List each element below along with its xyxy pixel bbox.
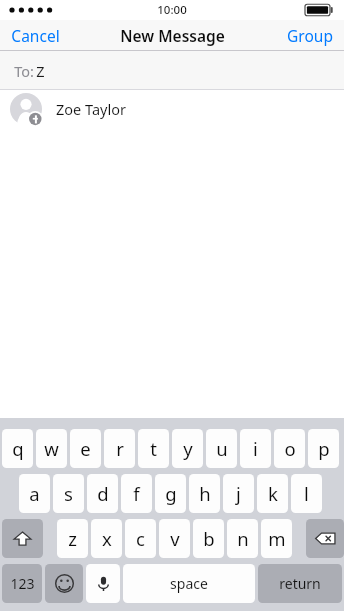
button[interactable]: h	[189, 474, 220, 513]
staticText: j	[236, 481, 241, 506]
button[interactable]: a	[19, 474, 50, 513]
staticText: q	[12, 436, 24, 461]
button[interactable]: j	[223, 474, 254, 513]
staticText: To:	[12, 61, 36, 81]
staticText: New Message	[120, 25, 225, 46]
staticText: f	[133, 481, 140, 506]
staticText: l	[304, 481, 309, 506]
staticText: 123	[10, 574, 35, 593]
button[interactable]: i	[240, 429, 271, 468]
button[interactable]: p	[308, 429, 339, 468]
button[interactable]: k	[257, 474, 288, 513]
button[interactable]: r	[104, 429, 135, 468]
button[interactable]: m	[261, 519, 292, 558]
button[interactable]: Zoe Taylor	[0, 90, 344, 128]
button[interactable]: d	[87, 474, 118, 513]
staticText: c	[136, 526, 145, 551]
staticText: x	[102, 526, 112, 551]
button[interactable]: space	[123, 564, 255, 603]
staticText: d	[97, 481, 109, 506]
staticText: 10:00	[157, 2, 187, 18]
staticText: h	[199, 481, 211, 506]
staticText: Cancel	[11, 25, 60, 46]
staticText: u	[216, 436, 228, 461]
button[interactable]: w	[36, 429, 67, 468]
staticText: Z	[36, 61, 45, 81]
button[interactable]: o	[274, 429, 305, 468]
button[interactable]: s	[53, 474, 84, 513]
button[interactable]: 123	[2, 564, 42, 603]
button[interactable]: To:	[0, 51, 344, 90]
staticText: m	[268, 526, 286, 551]
staticText: z	[68, 526, 77, 551]
button[interactable]: Emoji	[45, 564, 83, 603]
button[interactable]: Group	[276, 20, 344, 51]
button[interactable]: u	[206, 429, 237, 468]
button[interactable]: Shift	[2, 519, 43, 558]
button[interactable]: Delete	[306, 519, 344, 558]
staticText: e	[80, 436, 91, 461]
staticText: s	[64, 481, 73, 506]
button[interactable]: q	[2, 429, 33, 468]
staticText: Group	[287, 25, 333, 46]
staticText: v	[170, 526, 180, 551]
staticText: k	[268, 481, 278, 506]
button[interactable]: b	[193, 519, 224, 558]
staticText: Zoe Taylor	[56, 99, 126, 119]
button[interactable]: return	[258, 564, 342, 603]
button[interactable]: e	[70, 429, 101, 468]
button[interactable]: z	[57, 519, 88, 558]
staticText: r	[116, 436, 124, 461]
staticText: w	[44, 436, 59, 461]
staticText: return	[279, 574, 321, 593]
button[interactable]: Dictate	[86, 564, 120, 603]
button[interactable]: t	[138, 429, 169, 468]
staticText: o	[284, 436, 296, 461]
button[interactable]: c	[125, 519, 156, 558]
staticText: t	[150, 436, 157, 461]
staticText: g	[165, 481, 177, 506]
staticText: n	[237, 526, 249, 551]
button[interactable]: n	[227, 519, 258, 558]
staticText: i	[253, 436, 258, 461]
staticText: b	[203, 526, 215, 551]
staticText: space	[170, 574, 208, 593]
button[interactable]: y	[172, 429, 203, 468]
button[interactable]: f	[121, 474, 152, 513]
button[interactable]: x	[91, 519, 122, 558]
button[interactable]: Cancel	[0, 20, 71, 51]
staticText: a	[29, 481, 40, 506]
button[interactable]: g	[155, 474, 186, 513]
button[interactable]: l	[291, 474, 322, 513]
staticText: p	[318, 436, 330, 461]
button[interactable]: v	[159, 519, 190, 558]
staticText: y	[183, 436, 193, 461]
